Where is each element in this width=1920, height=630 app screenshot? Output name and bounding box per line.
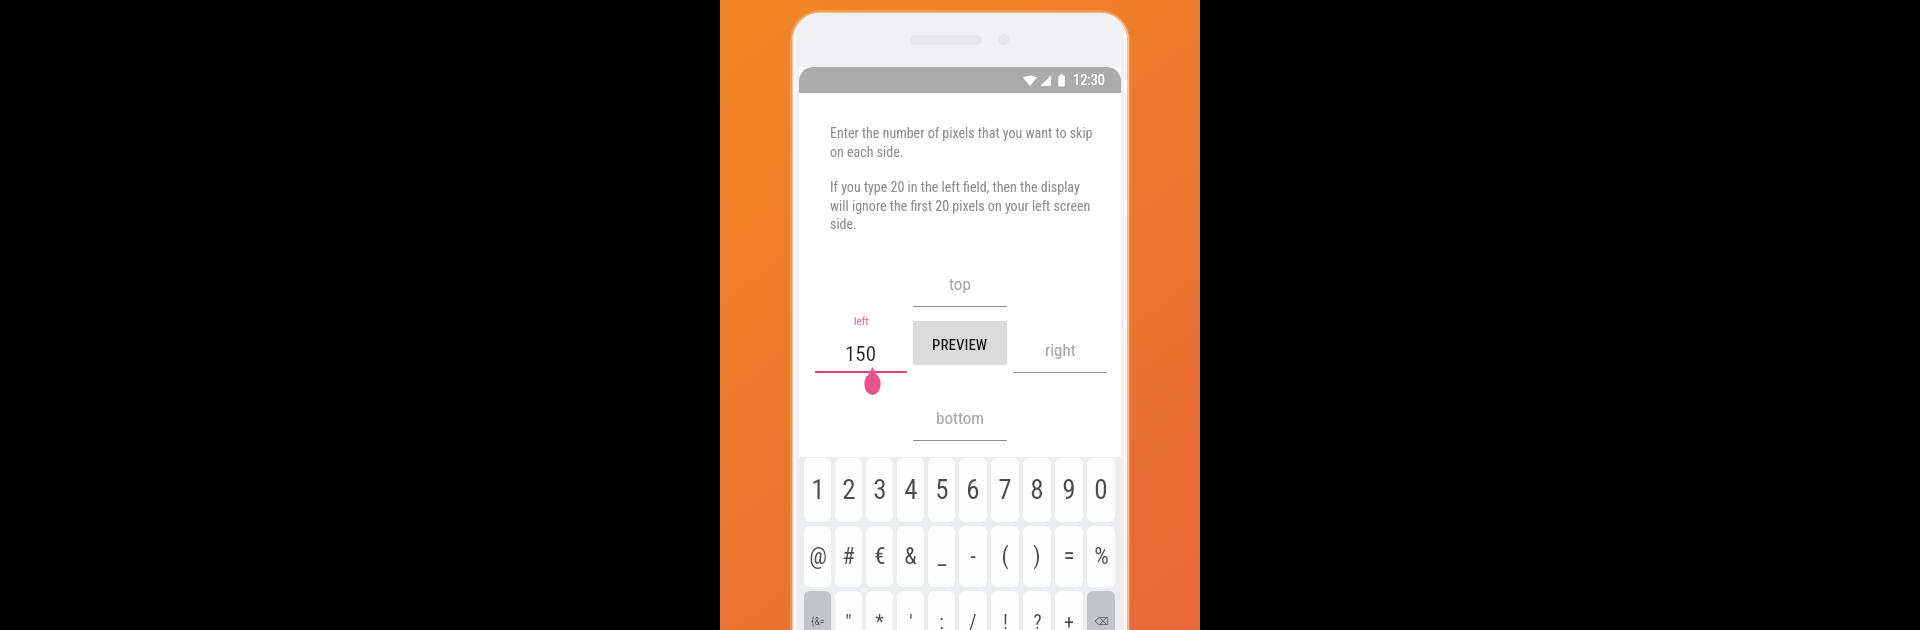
other: Battery — [1056, 73, 1067, 89]
staticText: Enter the number of pixels that you want… — [830, 125, 1098, 160]
button[interactable]: " — [835, 591, 862, 630]
button[interactable]: {&= — [804, 591, 831, 630]
button[interactable]: - — [959, 526, 987, 587]
staticText: 2 — [842, 474, 856, 506]
button[interactable]: ? — [1023, 591, 1051, 630]
button[interactable]: ⌫ — [1087, 591, 1115, 630]
staticText: / — [969, 610, 977, 630]
staticText: 12:30 — [1073, 72, 1106, 89]
button[interactable]: bottom — [913, 408, 1007, 441]
other: Cellular signal — [1039, 73, 1052, 89]
staticText: 4 — [904, 474, 918, 506]
button[interactable]: left — [815, 315, 907, 373]
staticText: & — [904, 543, 917, 570]
button[interactable]: * — [866, 591, 893, 630]
staticText: € — [874, 543, 886, 570]
button[interactable]: 1 — [804, 458, 831, 522]
button[interactable]: € — [866, 526, 893, 587]
button[interactable]: PREVIEW — [913, 321, 1007, 365]
staticText: - — [970, 543, 976, 570]
staticText: right — [1045, 340, 1076, 360]
staticText: ) — [1033, 543, 1041, 570]
button[interactable]: 7 — [991, 458, 1019, 522]
staticText: PREVIEW — [932, 336, 988, 354]
staticText: ? — [1033, 610, 1042, 630]
staticText: left — [854, 315, 869, 328]
staticText: ' — [909, 610, 913, 630]
staticText: * — [875, 610, 884, 630]
other: Text cursor handle — [863, 367, 882, 395]
staticText: 9 — [1062, 474, 1076, 506]
staticText: 150 — [845, 342, 877, 367]
button[interactable]: 8 — [1023, 458, 1051, 522]
button[interactable]: _ — [928, 526, 955, 587]
button[interactable]: 6 — [959, 458, 987, 522]
button[interactable]: & — [897, 526, 924, 587]
other: Wi-Fi signal — [1022, 73, 1038, 89]
button[interactable]: @ — [804, 526, 831, 587]
button[interactable]: ) — [1023, 526, 1051, 587]
staticText: 3 — [873, 474, 887, 506]
button[interactable]: 9 — [1055, 458, 1083, 522]
staticText: 6 — [966, 474, 980, 506]
staticText: @ — [809, 543, 827, 570]
staticText: 7 — [998, 474, 1012, 506]
staticText: : — [939, 610, 944, 630]
staticText: bottom — [936, 408, 985, 428]
button[interactable]: + — [1055, 591, 1083, 630]
staticText: 8 — [1030, 474, 1044, 506]
button[interactable]: ' — [897, 591, 924, 630]
button[interactable]: right — [1013, 340, 1107, 373]
staticText: 5 — [935, 474, 949, 506]
staticText: ⌫ — [1094, 616, 1109, 628]
button[interactable]: 3 — [866, 458, 893, 522]
button[interactable]: 2 — [835, 458, 862, 522]
button[interactable]: 4 — [897, 458, 924, 522]
staticText: + — [1064, 610, 1074, 630]
staticText: 0 — [1094, 474, 1108, 506]
staticText: # — [842, 543, 855, 570]
button[interactable]: ! — [991, 591, 1019, 630]
button[interactable]: = — [1055, 526, 1083, 587]
staticText: If you type 20 in the left field, then t… — [830, 179, 1098, 232]
button[interactable]: / — [959, 591, 987, 630]
staticText: {&= — [811, 616, 825, 628]
staticText: 1 — [811, 474, 825, 506]
button[interactable]: # — [835, 526, 862, 587]
staticText: = — [1063, 543, 1075, 570]
staticText: ! — [1003, 610, 1008, 630]
button[interactable]: : — [928, 591, 955, 630]
staticText: ( — [1001, 543, 1009, 570]
staticText: top — [949, 274, 971, 294]
button[interactable]: ( — [991, 526, 1019, 587]
staticText: _ — [937, 543, 947, 570]
button[interactable]: 0 — [1087, 458, 1115, 522]
button[interactable]: top — [913, 274, 1007, 307]
staticText: " — [845, 610, 852, 630]
button[interactable]: 5 — [928, 458, 955, 522]
button[interactable]: % — [1087, 526, 1115, 587]
staticText: % — [1094, 543, 1109, 570]
